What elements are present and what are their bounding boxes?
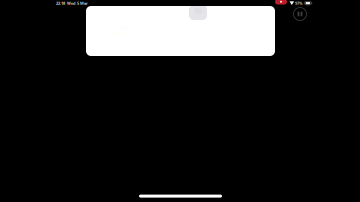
staticText: 22.18 Wed 5 Mar	[56, 0, 88, 6]
button[interactable]: Sheet	[86, 6, 275, 56]
staticText: 97%	[295, 0, 303, 6]
button[interactable]: Pause recording	[292, 6, 308, 22]
